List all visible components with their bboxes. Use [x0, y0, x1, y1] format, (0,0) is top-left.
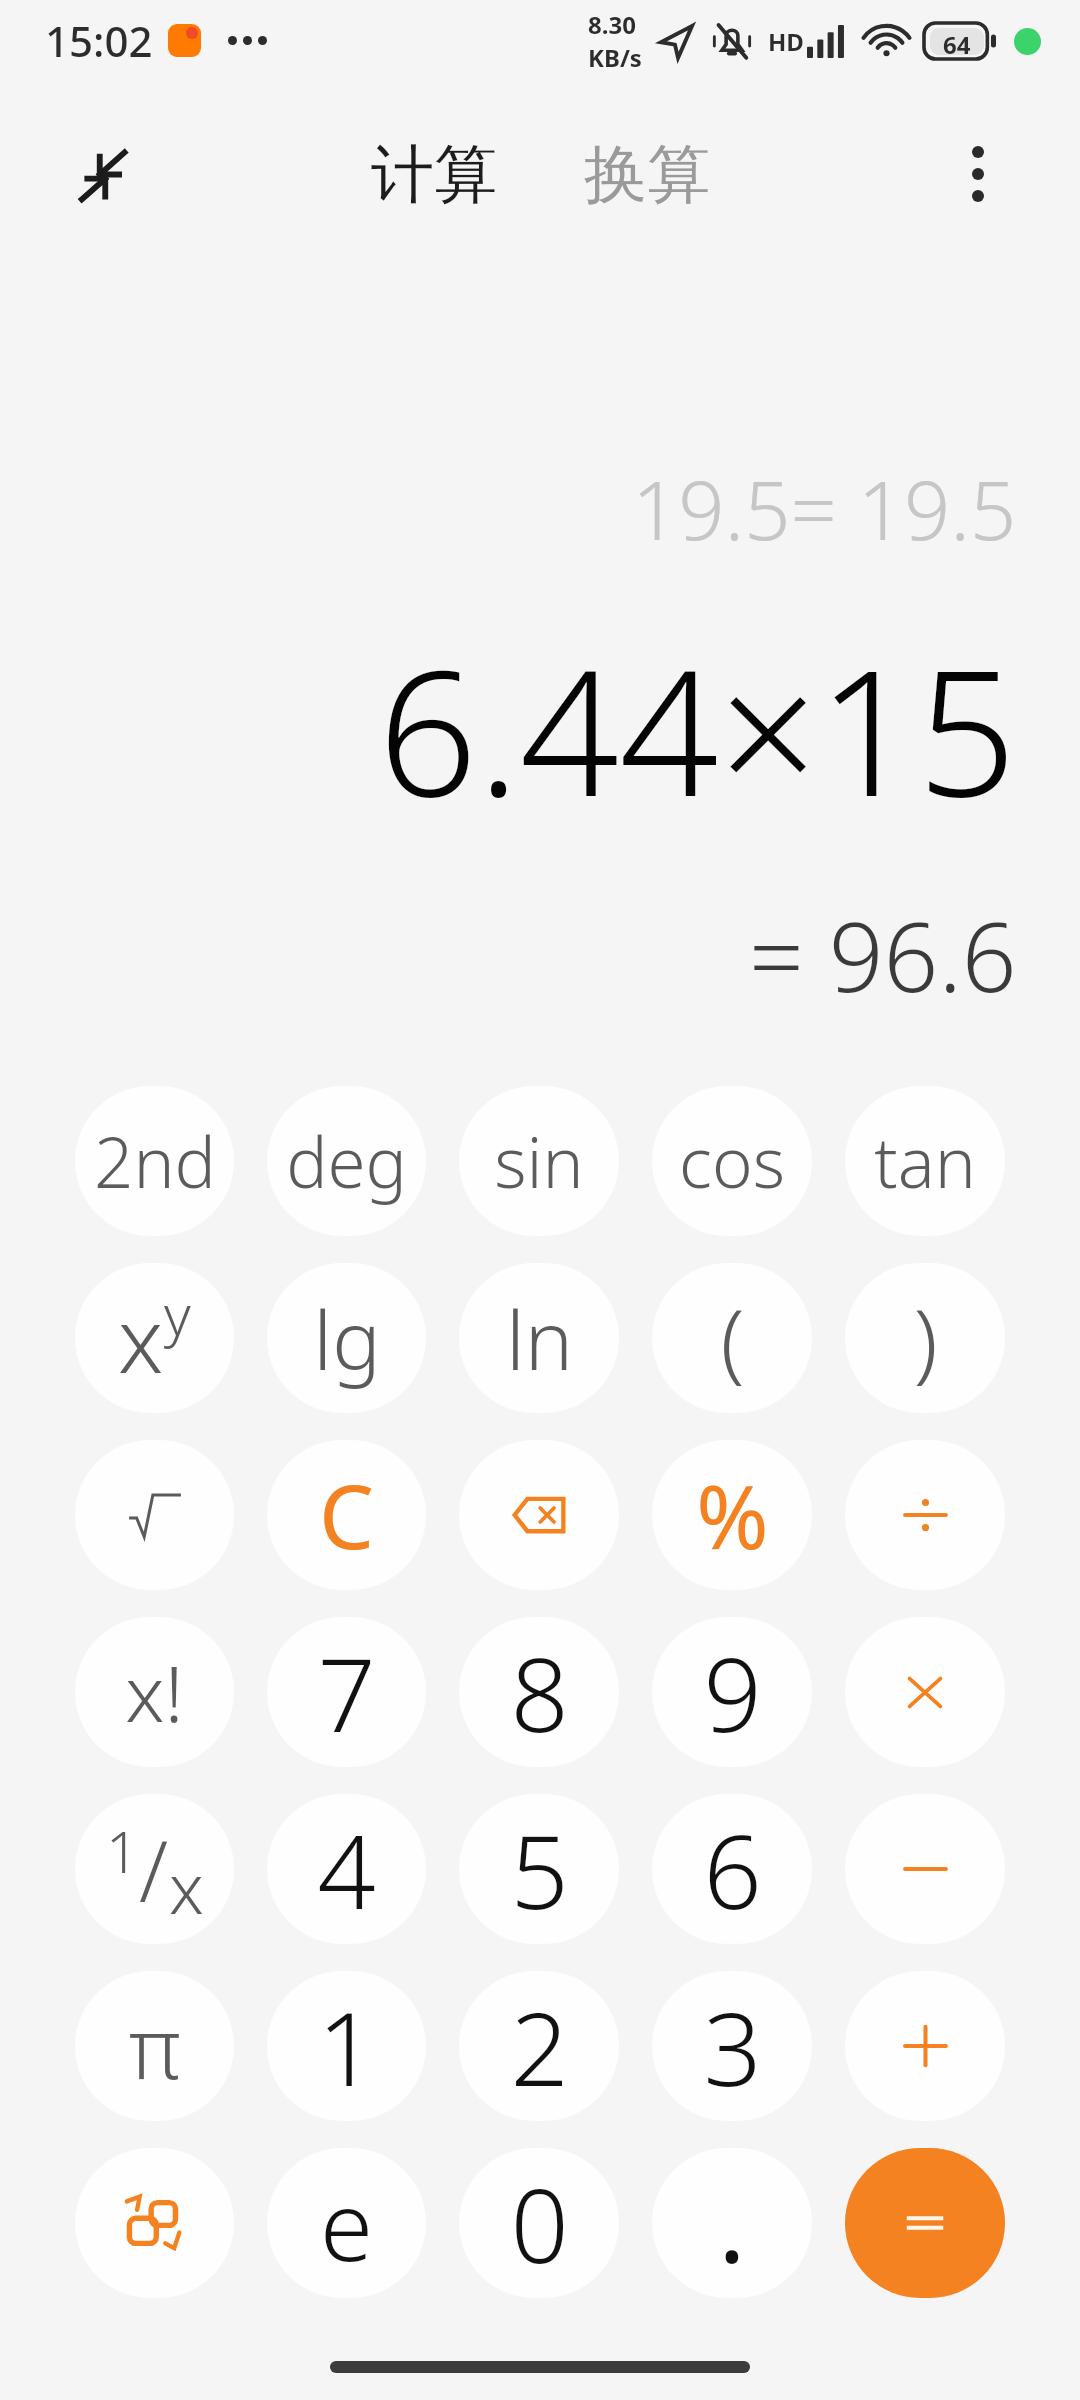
button[interactable]: 1: [75, 1794, 234, 1944]
button[interactable]: More options: [906, 102, 1050, 246]
other: Multiply: [901, 1670, 949, 1715]
button[interactable]: Equals: [845, 2148, 1005, 2298]
staticText: deg: [286, 1114, 407, 1208]
staticText: 7: [317, 1623, 376, 1762]
staticText: 8.30: [588, 8, 636, 41]
button[interactable]: 9: [652, 1617, 812, 1767]
staticText: = 96.6: [749, 889, 1017, 1020]
button[interactable]: π: [75, 1971, 234, 2121]
staticText: KB/s: [588, 41, 642, 74]
button[interactable]: 5: [459, 1794, 619, 1944]
staticText: 19.5= 19.5: [632, 453, 1017, 563]
staticText: 2nd: [94, 1114, 216, 1208]
staticText: ): [913, 1279, 938, 1397]
staticText: %: [696, 1456, 769, 1574]
button[interactable]: lg: [267, 1263, 426, 1413]
button[interactable]: 2nd: [75, 1086, 234, 1236]
staticText: 6.44×15: [378, 610, 1017, 847]
button[interactable]: 2: [459, 1971, 619, 2121]
button[interactable]: 8: [459, 1617, 619, 1767]
staticText: x: [169, 1840, 204, 1934]
staticText: 4: [317, 1800, 376, 1939]
button[interactable]: tan: [845, 1086, 1005, 1236]
button[interactable]: cos: [652, 1086, 812, 1236]
button[interactable]: 7: [267, 1617, 426, 1767]
other: Shake to clear: [123, 2193, 187, 2253]
other: Divide: [900, 1491, 951, 1539]
button[interactable]: Multiply: [845, 1617, 1005, 1767]
staticText: /: [139, 1812, 169, 1926]
staticText: 9: [703, 1623, 762, 1762]
button[interactable]: Divide: [845, 1440, 1005, 1590]
staticText: e: [320, 2158, 373, 2289]
button[interactable]: 3: [652, 1971, 812, 2121]
other: Plus: [900, 2022, 951, 2070]
staticText: 64: [943, 28, 971, 55]
staticText: x: [118, 1277, 164, 1400]
button[interactable]: (: [652, 1263, 812, 1413]
staticText: .: [718, 2154, 746, 2293]
button[interactable]: e: [267, 2148, 426, 2298]
other: Minus: [900, 1845, 951, 1893]
button[interactable]: ): [845, 1263, 1005, 1413]
staticText: tan: [874, 1114, 976, 1208]
button[interactable]: Plus: [845, 1971, 1005, 2121]
other: Equals: [901, 2208, 949, 2238]
button[interactable]: .: [652, 2148, 812, 2298]
staticText: 1: [317, 1977, 376, 2116]
staticText: 1: [106, 1812, 139, 1890]
button[interactable]: sin: [459, 1086, 619, 1236]
staticText: 3: [703, 1977, 762, 2116]
staticText: (: [720, 1279, 745, 1397]
button[interactable]: 换算: [566, 123, 728, 226]
staticText: 5: [510, 1800, 569, 1939]
button[interactable]: 0: [459, 2148, 619, 2298]
button[interactable]: 计算: [353, 123, 515, 226]
staticText: 6: [703, 1800, 762, 1939]
staticText: sin: [494, 1114, 584, 1208]
staticText: y: [164, 1275, 191, 1353]
button[interactable]: Shake to clear: [75, 2148, 234, 2298]
staticText: π: [129, 1989, 181, 2103]
button[interactable]: Square root: [75, 1440, 234, 1590]
button[interactable]: Minus: [845, 1794, 1005, 1944]
button[interactable]: x!: [75, 1617, 234, 1767]
other: Square root: [128, 1490, 182, 1541]
staticText: 8: [510, 1623, 569, 1762]
staticText: 15:02: [45, 12, 153, 69]
staticText: lg: [313, 1283, 381, 1393]
staticText: x!: [125, 1639, 184, 1745]
button[interactable]: C: [267, 1440, 426, 1590]
button[interactable]: Backspace: [459, 1440, 619, 1590]
button[interactable]: deg: [267, 1086, 426, 1236]
staticText: 2: [510, 1977, 569, 2116]
staticText: 0: [510, 2154, 569, 2293]
staticText: 计算: [371, 135, 497, 214]
staticText: HD: [768, 25, 804, 58]
button[interactable]: 4: [267, 1794, 426, 1944]
button[interactable]: x: [75, 1263, 234, 1413]
staticText: ln: [506, 1283, 573, 1393]
button[interactable]: %: [652, 1440, 812, 1590]
button[interactable]: 1: [267, 1971, 426, 2121]
button[interactable]: ln: [459, 1263, 619, 1413]
other: Backspace: [510, 1488, 568, 1542]
button[interactable]: Collapse: [30, 102, 174, 246]
staticText: C: [319, 1456, 374, 1574]
staticText: 换算: [584, 135, 710, 214]
button[interactable]: 6: [652, 1794, 812, 1944]
staticText: cos: [679, 1114, 785, 1208]
